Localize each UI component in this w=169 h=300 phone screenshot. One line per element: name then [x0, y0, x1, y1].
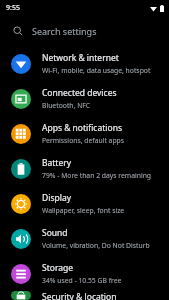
staticText: Apps & notifications [42, 122, 122, 134]
staticText: Bluetooth, NFC [42, 101, 91, 110]
staticText: Storage [42, 262, 74, 274]
staticText: Network & internet [42, 52, 119, 64]
staticText: Sound [42, 227, 68, 239]
staticText: 9:55 [6, 3, 20, 13]
button[interactable]: Apps & notifications [0, 116, 169, 151]
staticText: 34% used - 10.55 GB free [42, 276, 122, 285]
staticText: Search settings [32, 25, 97, 37]
button[interactable]: Display [0, 186, 169, 221]
staticText: Volume, vibration, Do Not Disturb [42, 241, 150, 250]
staticText: Battery [42, 157, 72, 169]
button[interactable]: Search settings [0, 16, 169, 46]
staticText: Permissions, default apps [42, 136, 125, 145]
staticText: Connected devices [42, 87, 117, 99]
button[interactable]: Connected devices [0, 81, 169, 116]
staticText: 79% - More than 2 days remaining [42, 171, 152, 180]
button[interactable]: Sound [0, 221, 169, 256]
staticText: Wi-Fi, mobile, data usage, hotspot [42, 66, 151, 75]
button[interactable]: Battery [0, 151, 169, 186]
staticText: Display [42, 192, 71, 204]
button[interactable]: Storage [0, 256, 169, 291]
staticText: Security & location [42, 291, 117, 300]
staticText: Wallpaper, sleep, font size [42, 206, 125, 215]
button[interactable]: Security & location [0, 291, 169, 300]
button[interactable]: Network & internet [0, 46, 169, 81]
